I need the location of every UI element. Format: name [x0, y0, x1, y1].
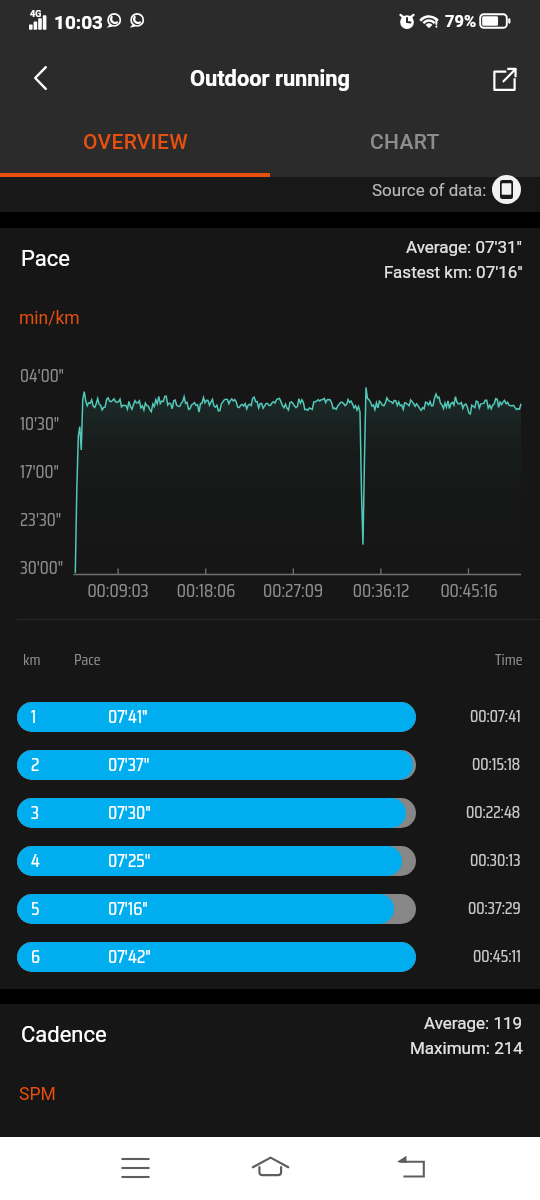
staticText: 07'42": [108, 942, 151, 971]
button[interactable]: 2: [0, 750, 540, 780]
staticText: Time: [495, 647, 523, 672]
staticText: 5: [31, 894, 40, 923]
staticText: 00:27:09: [248, 575, 338, 605]
staticText: km: [23, 647, 41, 672]
staticText: 4G: [30, 9, 42, 20]
staticText: 79%: [445, 12, 477, 31]
staticText: 6: [31, 942, 41, 971]
staticText: 00:09:03: [73, 575, 163, 605]
staticText: Pace: [21, 246, 70, 272]
button[interactable]: Source of data:: [372, 175, 521, 204]
staticText: 07'37": [108, 750, 150, 779]
button[interactable]: 5: [0, 894, 540, 924]
staticText: 30'00": [20, 553, 64, 582]
staticText: 4: [31, 846, 40, 875]
button[interactable]: Home: [245, 1147, 295, 1191]
staticText: min/km: [19, 308, 80, 329]
staticText: 00:15:18: [472, 751, 521, 778]
staticText: 23'30": [20, 505, 62, 534]
staticText: 07'41": [108, 702, 148, 731]
button[interactable]: 4: [0, 846, 540, 876]
staticText: Outdoor running: [190, 66, 350, 92]
staticText: 10:03: [54, 11, 103, 33]
staticText: 2: [31, 750, 40, 779]
staticText: 07'30": [108, 798, 151, 827]
staticText: 00:45:11: [473, 943, 521, 970]
staticText: 07'25": [108, 846, 151, 875]
button[interactable]: CHART: [270, 112, 540, 173]
staticText: SPM: [19, 1084, 56, 1105]
staticText: Source of data:: [372, 180, 487, 200]
button[interactable]: OVERVIEW: [0, 112, 270, 173]
staticText: 17'00": [20, 457, 59, 486]
staticText: Fastest km: 07'16": [384, 262, 523, 282]
staticText: 3: [31, 798, 40, 827]
staticText: 00:45:16: [424, 575, 514, 605]
staticText: Average: 07'31": [406, 237, 523, 257]
button[interactable]: Back: [385, 1147, 435, 1191]
staticText: Average: 119: [424, 1013, 523, 1033]
staticText: 00:36:12: [336, 575, 426, 605]
staticText: 00:22:48: [466, 799, 521, 826]
staticText: Cadence: [21, 1022, 107, 1048]
staticText: 00:30:13: [470, 847, 521, 874]
staticText: 1: [31, 702, 37, 731]
button[interactable]: 3: [0, 798, 540, 828]
staticText: Pace: [74, 647, 101, 672]
staticText: 00:07:41: [470, 703, 521, 730]
staticText: 04'00": [20, 361, 65, 390]
button[interactable]: Back: [16, 55, 64, 103]
staticText: 00:37:29: [468, 895, 521, 922]
button[interactable]: 6: [0, 942, 540, 972]
button[interactable]: Share: [480, 55, 528, 103]
staticText: 00:18:06: [161, 575, 251, 605]
staticText: 10'30": [20, 409, 60, 438]
staticText: Maximum: 214: [410, 1038, 523, 1058]
button[interactable]: Recent apps: [110, 1147, 160, 1191]
staticText: CHART: [370, 130, 440, 155]
staticText: 07'16": [108, 894, 148, 923]
button[interactable]: 1: [0, 702, 540, 732]
staticText: OVERVIEW: [83, 130, 188, 155]
